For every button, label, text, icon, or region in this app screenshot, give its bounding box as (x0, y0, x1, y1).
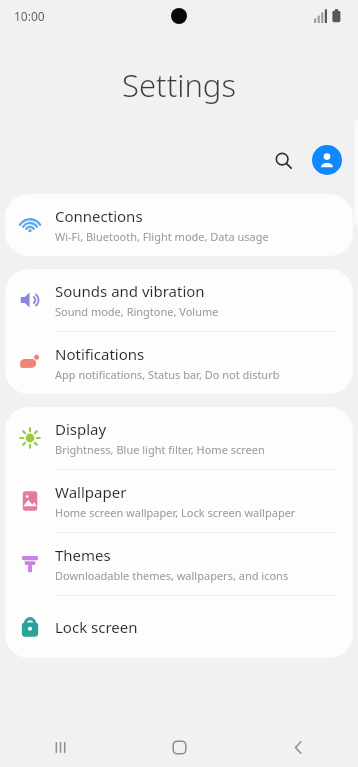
button[interactable]: Recent apps (0, 727, 120, 767)
button[interactable]: Themes (5, 533, 353, 595)
staticText: Home screen wallpaper, Lock screen wallp… (55, 505, 296, 520)
button[interactable]: Sounds and vibration (5, 269, 353, 331)
button[interactable]: Home (120, 727, 239, 767)
staticText: Notifications (55, 344, 145, 364)
button[interactable]: Search (264, 141, 302, 179)
staticText: Brightness, Blue light filter, Home scre… (55, 442, 265, 457)
button[interactable]: Lock screen (5, 596, 353, 658)
staticText: Wi-Fi, Bluetooth, Flight mode, Data usag… (55, 229, 269, 244)
staticText: Sound mode, Ringtone, Volume (55, 304, 219, 319)
button[interactable]: Wallpaper (5, 470, 353, 532)
staticText: Display (55, 419, 107, 439)
button[interactable]: Back (239, 727, 358, 767)
staticText: Sounds and vibration (55, 281, 205, 301)
staticText: 10:00 (14, 8, 45, 24)
button[interactable]: Display (5, 407, 353, 469)
staticText: Settings (122, 64, 236, 106)
staticText: Downloadable themes, wallpapers, and ico… (55, 568, 289, 583)
staticText: Themes (55, 545, 111, 565)
staticText: App notifications, Status bar, Do not di… (55, 367, 280, 382)
button[interactable]: Notifications (5, 332, 353, 394)
staticText: Wallpaper (55, 482, 127, 502)
staticText: Connections (55, 206, 143, 226)
button[interactable]: Connections (5, 194, 353, 256)
button[interactable]: Account (312, 145, 342, 175)
staticText: Lock screen (55, 617, 138, 637)
